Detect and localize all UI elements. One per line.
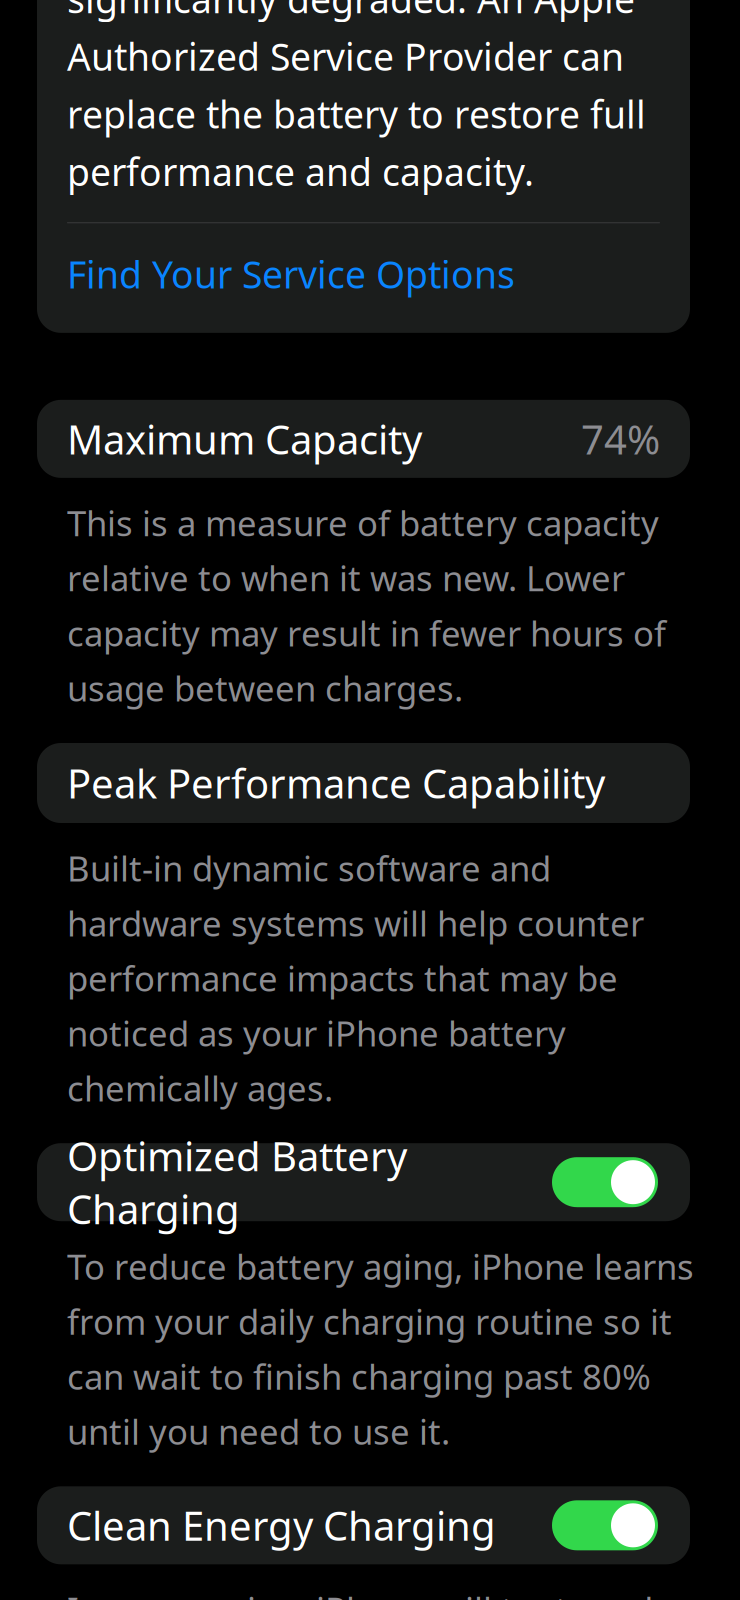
staticText: Clean Energy Charging	[67, 1499, 496, 1552]
staticText: Peak Performance Capability	[67, 756, 605, 809]
staticText: Maximum Capacity	[67, 412, 422, 465]
button[interactable]: Find Your Service Options	[67, 249, 660, 299]
staticText: In your region, iPhone will try to reduc…	[67, 1586, 711, 1600]
staticText: To reduce battery aging, iPhone learns f…	[67, 1243, 694, 1454]
button[interactable]: Clean Energy Charging	[37, 1486, 690, 1564]
staticText: Your battery’s health is significantly d…	[67, 0, 646, 196]
button[interactable]: Maximum Capacity	[37, 400, 690, 478]
staticText: Find Your Service Options	[67, 249, 515, 299]
button[interactable]: Optimized Battery Charging	[37, 1143, 690, 1221]
staticText: This is a measure of battery capacity re…	[67, 500, 666, 711]
staticText: 74%	[581, 412, 660, 465]
staticText: Built-in dynamic software and hardware s…	[67, 845, 644, 1111]
staticText: Optimized Battery Charging	[67, 1129, 407, 1235]
button[interactable]: Peak Performance Capability	[37, 743, 690, 823]
